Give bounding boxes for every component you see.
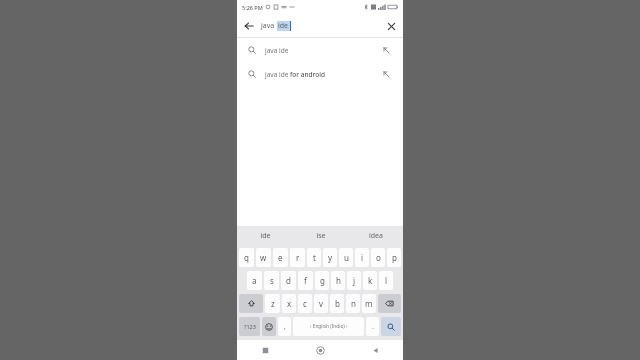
staticText: q <box>244 252 249 263</box>
staticText: ide <box>260 231 271 241</box>
staticText: n <box>351 298 356 309</box>
button[interactable]: Home <box>293 340 348 360</box>
button[interactable]: ?123 <box>239 317 260 336</box>
button[interactable]: n <box>346 294 360 313</box>
staticText: ‹ English (India) › <box>310 323 348 330</box>
staticText: d <box>286 275 291 286</box>
staticText: t <box>313 252 316 263</box>
staticText: ?123 <box>244 323 256 330</box>
button[interactable]: i <box>355 248 369 267</box>
button[interactable]: m <box>362 294 376 313</box>
button[interactable]: q <box>239 248 254 267</box>
button[interactable]: s <box>264 271 279 290</box>
button[interactable]: h <box>331 271 345 290</box>
button[interactable]: t <box>307 248 321 267</box>
button[interactable]: u <box>339 248 353 267</box>
staticText: g <box>320 275 325 286</box>
staticText: j <box>353 275 356 286</box>
button[interactable]: Back <box>237 14 261 38</box>
button[interactable]: Space <box>293 317 364 336</box>
staticText: a <box>252 275 257 286</box>
staticText: java ide <box>265 70 290 79</box>
button[interactable]: f <box>298 271 313 290</box>
staticText: ide <box>278 21 289 31</box>
button[interactable]: w <box>256 248 271 267</box>
button[interactable]: p <box>387 248 401 267</box>
staticText: java <box>261 21 277 31</box>
button[interactable]: . <box>366 317 379 336</box>
staticText: s <box>270 275 274 286</box>
staticText: , <box>284 322 286 332</box>
button[interactable]: idea <box>348 226 403 246</box>
staticText: 5:26 PM <box>242 4 263 11</box>
button[interactable]: a <box>247 271 262 290</box>
staticText: b <box>335 298 340 309</box>
staticText: idea <box>369 231 383 241</box>
button[interactable]: , <box>278 317 291 336</box>
button[interactable]: d <box>281 271 296 290</box>
staticText: w <box>260 252 267 263</box>
button[interactable]: Back <box>348 340 403 360</box>
staticText: java ide <box>265 46 289 55</box>
button[interactable]: g <box>315 271 329 290</box>
button[interactable]: o <box>371 248 385 267</box>
button[interactable]: java ide <box>237 62 403 86</box>
button[interactable]: r <box>290 248 305 267</box>
button[interactable]: Emoji <box>262 317 276 336</box>
staticText: c <box>303 298 307 309</box>
staticText: m <box>365 298 373 309</box>
staticText: i <box>361 252 364 263</box>
button[interactable]: e <box>273 248 288 267</box>
button[interactable]: v <box>314 294 328 313</box>
button[interactable]: Backspace <box>378 294 401 313</box>
staticText: p <box>392 252 397 263</box>
button[interactable]: Insert suggestion <box>378 66 394 82</box>
button[interactable]: java ide <box>237 38 403 62</box>
button[interactable]: k <box>363 271 377 290</box>
button[interactable]: Clear <box>379 14 403 38</box>
button[interactable]: x <box>282 294 296 313</box>
staticText: r <box>296 252 300 263</box>
button[interactable]: Recents <box>237 340 293 360</box>
staticText: u <box>344 252 349 263</box>
staticText: e <box>278 252 283 263</box>
button[interactable]: ise <box>293 226 348 246</box>
button[interactable]: z <box>265 294 280 313</box>
staticText: l <box>385 275 388 286</box>
staticText: v <box>319 298 324 309</box>
button[interactable]: b <box>330 294 344 313</box>
button[interactable]: j <box>347 271 361 290</box>
staticText: . <box>372 322 374 332</box>
staticText: z <box>271 298 275 309</box>
staticText: for android <box>290 70 325 79</box>
staticText: ise <box>316 231 326 241</box>
staticText: y <box>328 252 333 263</box>
button[interactable]: Insert suggestion <box>378 42 394 58</box>
staticText: f <box>304 275 307 286</box>
staticText: o <box>376 252 381 263</box>
button[interactable]: l <box>379 271 393 290</box>
button[interactable]: y <box>323 248 337 267</box>
staticText: x <box>287 298 292 309</box>
staticText: k <box>368 275 373 286</box>
button[interactable]: ide <box>237 226 293 246</box>
button[interactable]: Shift <box>239 294 263 313</box>
button[interactable]: Search <box>381 317 401 336</box>
staticText: h <box>336 275 341 286</box>
button[interactable]: c <box>298 294 312 313</box>
